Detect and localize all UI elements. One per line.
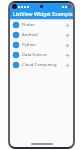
button[interactable]: Add Flutter: [65, 23, 70, 28]
staticText: Cloud Computing: [22, 62, 65, 68]
button[interactable]: Add Python: [65, 43, 70, 48]
button[interactable]: Flutter: [10, 20, 73, 30]
button[interactable]: Add Cloud Computing: [65, 63, 70, 68]
staticText: Data Science: [22, 52, 65, 58]
button[interactable]: Add Android: [65, 33, 70, 38]
staticText: Android: [22, 32, 65, 38]
button[interactable]: Android: [10, 30, 73, 40]
button[interactable]: Cloud Computing: [10, 60, 73, 70]
button[interactable]: Python: [10, 40, 73, 50]
staticText: Python: [22, 42, 65, 48]
button[interactable]: Data Science: [10, 50, 73, 60]
button[interactable]: Add Data Science: [65, 53, 70, 58]
staticText: Flutter: [22, 22, 65, 28]
staticText: ListView Widget Example: [13, 11, 73, 18]
